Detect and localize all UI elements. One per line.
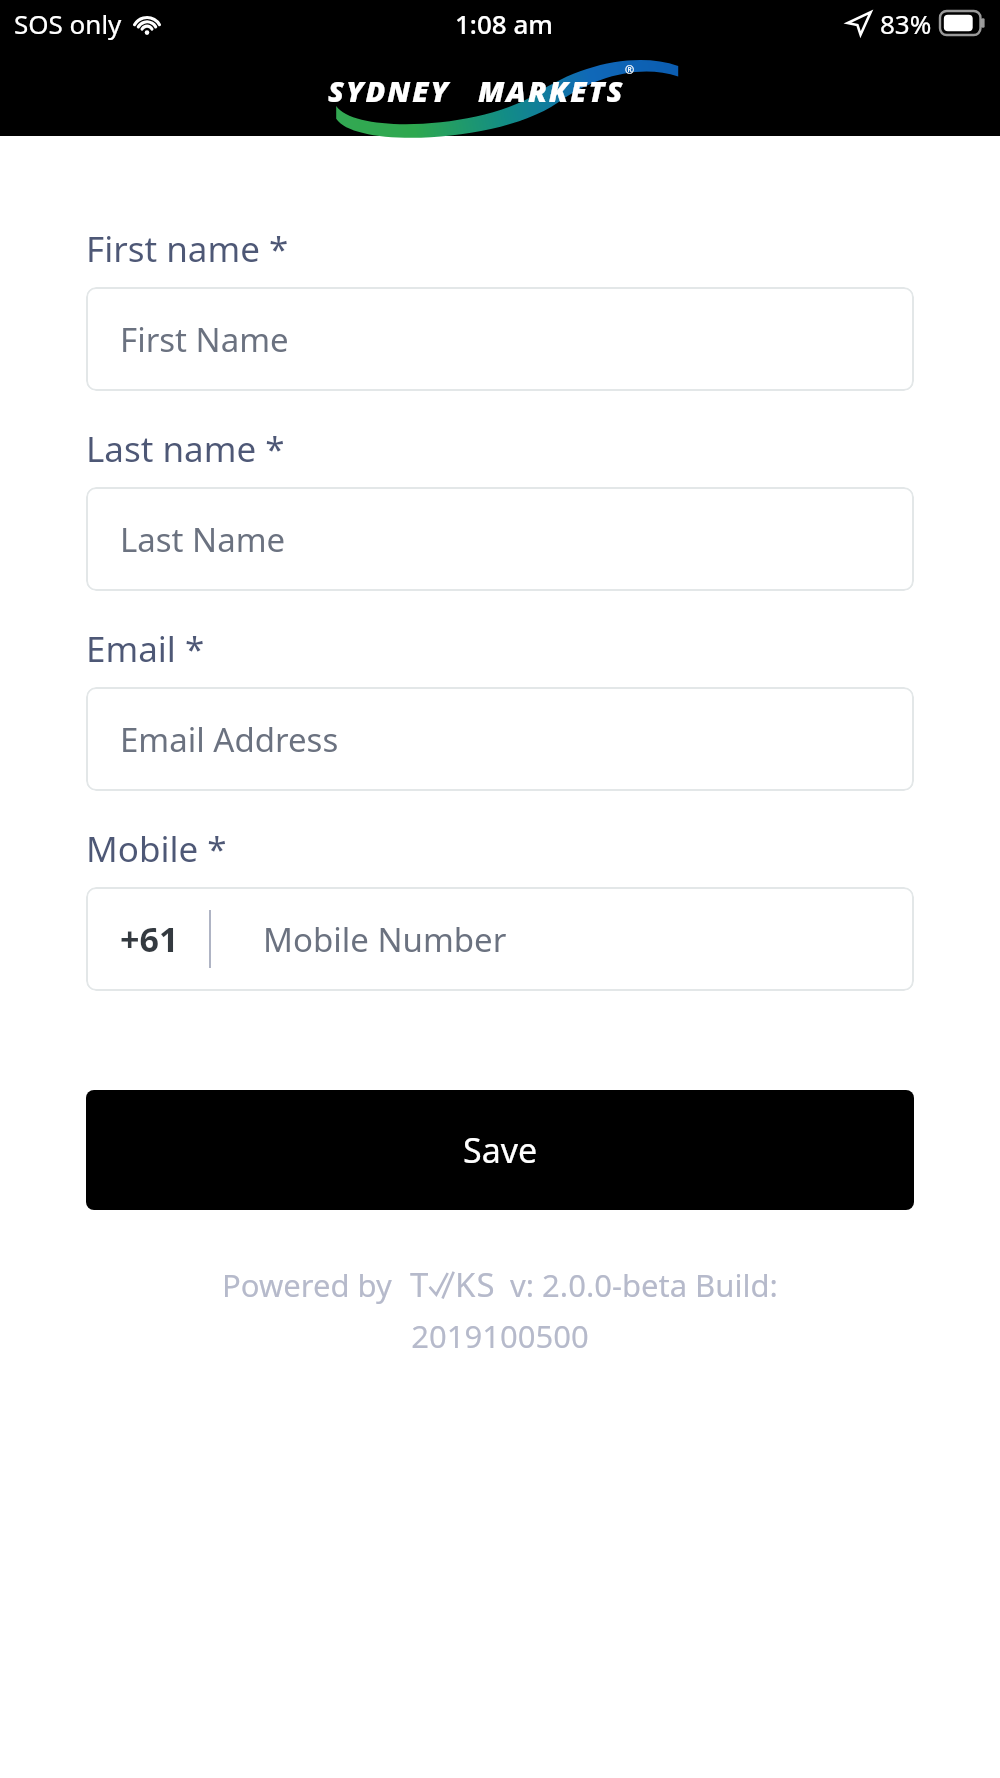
staticText: MARKETS — [478, 71, 625, 110]
staticText: SYDNEY — [328, 71, 450, 110]
staticText: Powered by — [222, 1264, 392, 1306]
staticText: 83% — [880, 6, 932, 41]
staticText: SOS only — [14, 6, 122, 41]
staticText: T — [410, 1262, 429, 1307]
staticText: Email * — [86, 625, 205, 673]
staticText: First Name — [120, 317, 289, 362]
staticText: Last Name — [120, 517, 286, 562]
staticText: Email Address — [120, 717, 339, 762]
button[interactable]: First Name — [86, 287, 914, 391]
staticText: 1:08 am — [455, 6, 553, 41]
staticText: First name * — [86, 225, 289, 273]
button[interactable]: +61 — [86, 887, 914, 991]
staticText: Mobile * — [86, 825, 227, 873]
staticText: v: 2.0.0-beta Build: — [510, 1264, 778, 1306]
staticText: +61 — [120, 916, 179, 962]
staticText: ® — [625, 62, 635, 77]
staticText: Last name * — [86, 425, 285, 473]
staticText: 2019100500 — [411, 1315, 589, 1357]
staticText: Save — [463, 1127, 538, 1173]
staticText: KS — [455, 1262, 496, 1307]
staticText: Mobile Number — [263, 917, 507, 962]
button[interactable]: Save — [86, 1090, 914, 1210]
button[interactable]: Email Address — [86, 687, 914, 791]
button[interactable]: Last Name — [86, 487, 914, 591]
